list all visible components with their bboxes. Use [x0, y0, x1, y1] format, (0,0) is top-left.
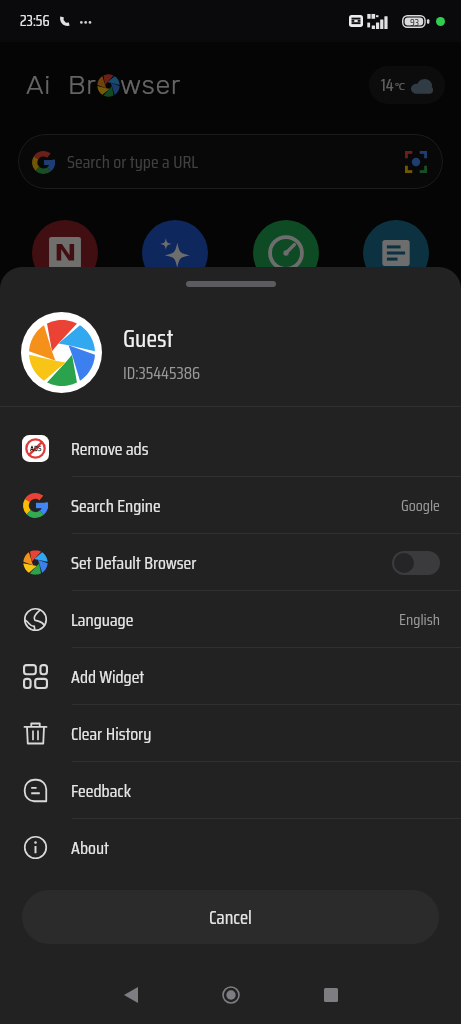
staticText: Search or type a URL — [67, 148, 199, 176]
staticText: Google — [401, 493, 440, 518]
button[interactable]: Shortcut — [32, 220, 98, 286]
staticText: Feedback — [71, 777, 131, 805]
button[interactable]: Shortcut — [363, 220, 429, 286]
staticText: wser — [120, 69, 181, 101]
staticText: 14 — [381, 72, 394, 99]
button[interactable]: About — [0, 819, 461, 876]
button[interactable]: Shortcut — [142, 220, 208, 286]
staticText: Set Default Browser — [71, 549, 197, 577]
button[interactable]: Recent apps — [303, 967, 359, 1023]
button[interactable]: Back — [103, 967, 159, 1023]
button[interactable]: Shortcut — [253, 220, 319, 286]
button[interactable]: Search or type a URL — [18, 134, 443, 189]
staticText: ID:35445386 — [123, 360, 201, 387]
staticText: Remove ads — [71, 435, 149, 463]
button[interactable]: Set Default Browser — [0, 534, 461, 591]
button[interactable]: Clear History — [0, 705, 461, 762]
staticText: English — [399, 607, 440, 632]
button[interactable]: ADS — [0, 420, 461, 477]
button[interactable]: Search Engine — [0, 477, 461, 534]
button[interactable]: Guest — [0, 312, 461, 393]
button[interactable]: Add Widget — [0, 648, 461, 705]
staticText: ℃ — [395, 79, 405, 93]
staticText: Cancel — [209, 902, 252, 932]
staticText: Clear History — [71, 720, 152, 748]
staticText: Guest — [123, 319, 174, 358]
staticText: Search Engine — [71, 492, 161, 520]
button[interactable]: Language — [0, 591, 461, 648]
button[interactable]: Home — [203, 967, 259, 1023]
button[interactable]: Feedback — [0, 762, 461, 819]
button[interactable]: Cancel — [22, 890, 439, 944]
staticText: Language — [71, 606, 134, 634]
staticText: ADS — [30, 442, 42, 455]
staticText: Br — [68, 69, 97, 101]
staticText: Add Widget — [71, 663, 145, 691]
staticText: 93 — [410, 15, 420, 28]
staticText: Ai — [26, 69, 51, 101]
staticText: 23:56 — [20, 9, 50, 33]
staticText: About — [71, 834, 109, 862]
button[interactable]: Weather 14 degrees — [369, 66, 445, 104]
